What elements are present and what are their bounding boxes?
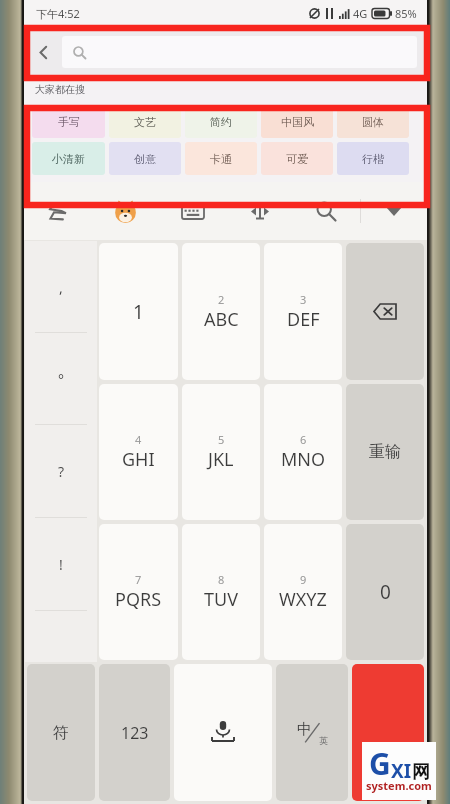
staticText: 小清新: [52, 152, 85, 166]
staticText: 中: [297, 720, 312, 739]
staticText: 英: [319, 735, 328, 746]
button[interactable]: 5: [182, 384, 260, 520]
button[interactable]: Search: [293, 182, 360, 240]
button[interactable]: [62, 36, 417, 68]
button[interactable]: Move cursor: [226, 182, 293, 240]
button[interactable]: 可爱: [261, 142, 333, 175]
staticText: 6: [300, 432, 307, 447]
staticText: 卡通: [210, 152, 232, 166]
staticText: 符: [53, 723, 69, 743]
button[interactable]: 0: [346, 524, 424, 660]
button[interactable]: 文艺: [109, 105, 181, 138]
button[interactable]: Switch Chinese English: [276, 664, 348, 801]
staticText: G: [369, 743, 391, 784]
staticText: 可爱: [286, 152, 308, 166]
button[interactable]: ,: [25, 241, 97, 333]
button[interactable]: 手写: [32, 105, 105, 138]
button[interactable]: 6: [264, 384, 342, 520]
button[interactable]: 中国风: [261, 105, 333, 138]
button[interactable]: !: [25, 518, 97, 611]
staticText: 2: [218, 292, 225, 307]
button[interactable]: 卡通: [185, 142, 257, 175]
button[interactable]: 简约: [185, 105, 257, 138]
staticText: PQRS: [115, 587, 162, 612]
staticText: MNO: [281, 447, 326, 472]
button[interactable]: 重输: [346, 384, 424, 520]
staticText: !: [59, 555, 63, 574]
button[interactable]: Keyboard: [159, 182, 226, 240]
staticText: 中国风: [281, 115, 314, 129]
staticText: 8: [218, 572, 225, 587]
staticText: 7: [135, 572, 142, 587]
staticText: GHI: [122, 447, 155, 472]
button[interactable]: Hide keyboard: [360, 182, 427, 240]
staticText: 0: [380, 579, 391, 605]
staticText: 1: [133, 299, 144, 325]
staticText: °: [58, 370, 64, 389]
button[interactable]: Emoji: [92, 182, 159, 240]
button[interactable]: 1: [99, 243, 178, 380]
button[interactable]: 7: [99, 524, 178, 660]
staticText: TUV: [204, 587, 238, 612]
staticText: 4G: [353, 6, 368, 21]
button[interactable]: 2: [182, 243, 260, 380]
button[interactable]: Back: [24, 26, 62, 78]
button[interactable]: Space / Voice input: [174, 664, 272, 801]
staticText: 网: [412, 761, 430, 784]
staticText: ?: [58, 462, 65, 481]
button[interactable]: 8: [182, 524, 260, 660]
staticText: WXYZ: [279, 587, 327, 612]
button[interactable]: 行楷: [337, 142, 409, 175]
staticText: 5: [218, 432, 225, 447]
staticText: JKL: [208, 447, 234, 472]
staticText: 圆体: [362, 115, 384, 129]
button[interactable]: 3: [264, 243, 342, 380]
button[interactable]: 小清新: [32, 142, 105, 175]
button[interactable]: 9: [264, 524, 342, 660]
button[interactable]: 123: [99, 664, 170, 801]
staticText: 简约: [210, 115, 232, 129]
staticText: DEF: [287, 307, 320, 332]
staticText: 123: [121, 722, 149, 744]
staticText: 4: [135, 432, 142, 447]
button[interactable]: °: [25, 333, 97, 425]
staticText: 85%: [395, 6, 417, 21]
staticText: 大家都在搜: [35, 83, 85, 96]
staticText: 文艺: [134, 115, 156, 129]
button[interactable]: ?: [25, 425, 97, 518]
staticText: 9: [300, 572, 307, 587]
staticText: ABC: [204, 307, 239, 332]
button[interactable]: 符: [27, 664, 95, 801]
button[interactable]: 4: [99, 384, 178, 520]
button[interactable]: 创意: [109, 142, 181, 175]
button[interactable]: Backspace: [346, 243, 424, 380]
button[interactable]: Sogou input: [24, 182, 92, 240]
staticText: XI: [391, 758, 412, 784]
staticText: 行楷: [362, 152, 384, 166]
staticText: 创意: [134, 152, 156, 166]
staticText: 重输: [369, 442, 401, 462]
staticText: 下午4:52: [36, 6, 80, 21]
button[interactable]: 圆体: [337, 105, 409, 138]
staticText: ,: [59, 278, 63, 297]
button[interactable]: Enter: [352, 664, 424, 801]
staticText: system.com: [366, 778, 432, 793]
staticText: 手写: [58, 115, 80, 129]
staticText: 3: [300, 292, 307, 307]
